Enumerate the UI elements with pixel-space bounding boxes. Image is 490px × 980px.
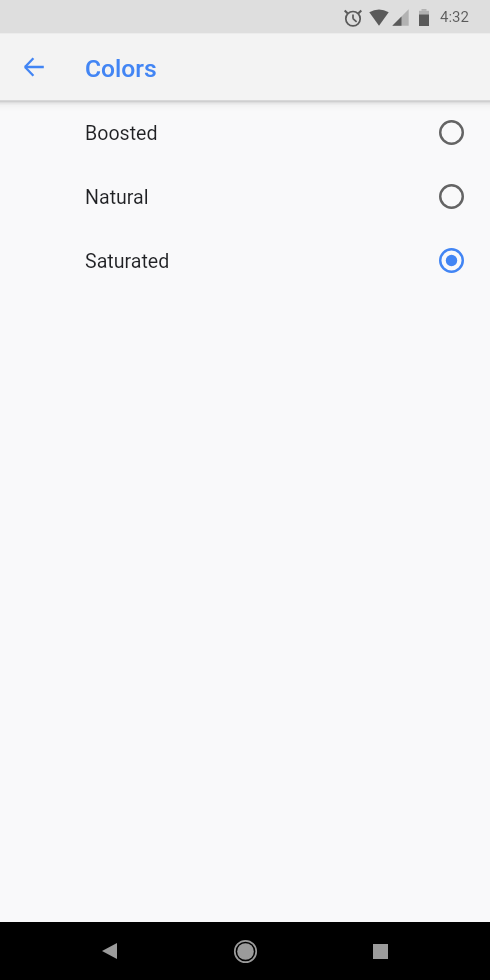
button[interactable]: Navigate back — [85, 927, 133, 975]
staticText: Natural — [85, 186, 149, 209]
staticText: Saturated — [85, 250, 170, 273]
staticText: Colors — [85, 54, 157, 83]
button[interactable]: Boosted — [0, 100, 490, 164]
button[interactable]: Home — [221, 927, 269, 975]
button[interactable]: Recent apps — [356, 927, 404, 975]
staticText: 4:32 — [440, 8, 469, 26]
staticText: Boosted — [85, 122, 158, 145]
button[interactable]: Back — [10, 43, 58, 91]
button[interactable]: Natural — [0, 164, 490, 228]
button[interactable]: Saturated — [0, 228, 490, 292]
